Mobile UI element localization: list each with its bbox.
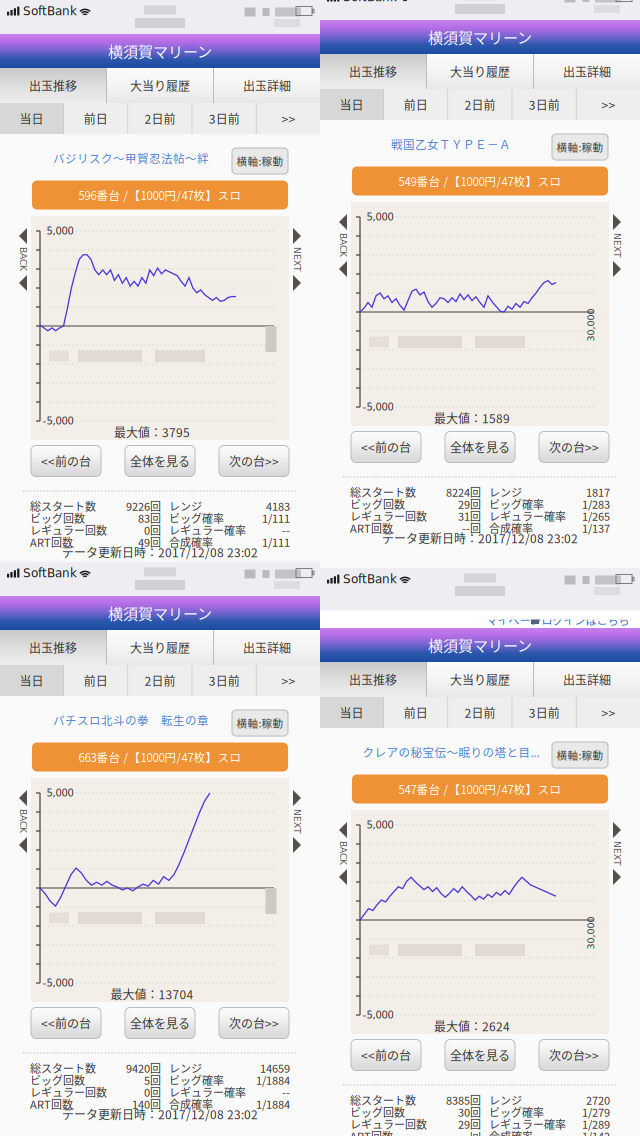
staticText: レギュラー確率: [489, 508, 566, 524]
staticText: パチスロ北斗の拳 転生の章: [53, 712, 209, 728]
button[interactable]: 当日: [320, 89, 383, 120]
staticText: SoftBank: [343, 572, 397, 586]
button[interactable]: 2日前: [448, 697, 512, 728]
button[interactable]: 全体を見る: [125, 445, 195, 476]
button[interactable]: 全体を見る: [445, 431, 515, 462]
staticText: 3日前: [209, 672, 240, 689]
staticText: 5,000: [46, 225, 73, 237]
staticText: 出玉詳細: [563, 63, 611, 80]
button[interactable]: >>: [257, 665, 320, 696]
staticText: ビッグ回数: [30, 1072, 85, 1088]
button[interactable]: <<前の台: [351, 1039, 421, 1070]
staticText: ビッグ回数: [350, 496, 405, 512]
button[interactable]: 前日: [384, 697, 447, 728]
button[interactable]: 当日: [320, 697, 383, 728]
button[interactable]: 全体を見る: [125, 1007, 195, 1038]
staticText: 横須賀マリーン: [108, 40, 212, 62]
button[interactable]: 次の台>>: [219, 1007, 289, 1038]
button[interactable]: 3日前: [513, 697, 576, 728]
button[interactable]: 2日前: [448, 89, 512, 120]
button[interactable]: <<前の台: [31, 1007, 101, 1038]
button[interactable]: Back: [335, 203, 351, 427]
staticText: ART回数: [350, 1128, 393, 1136]
button[interactable]: 大当り履歴: [107, 630, 213, 665]
button[interactable]: >>: [257, 103, 320, 134]
button[interactable]: 全体を見る: [445, 1039, 515, 1070]
staticText: 30回: [458, 1104, 481, 1120]
button[interactable]: 547番台 /【1000円/47枚】スロ: [352, 774, 608, 803]
staticText: 2日前: [144, 110, 175, 127]
staticText: 前日: [84, 672, 108, 689]
staticText: --回: [462, 520, 481, 536]
button[interactable]: Next: [289, 217, 305, 441]
staticText: >>: [601, 704, 615, 721]
staticText: 最大値：3795: [114, 423, 190, 441]
button[interactable]: 出玉推移: [0, 630, 106, 665]
staticText: BACK: [331, 240, 355, 250]
button[interactable]: <<前の台: [351, 431, 421, 462]
button[interactable]: 2日前: [128, 665, 192, 696]
button[interactable]: 大当り履歴: [107, 68, 213, 103]
staticText: 31回: [458, 508, 481, 524]
button[interactable]: 出玉詳細: [214, 630, 320, 665]
staticText: ART回数: [30, 534, 73, 550]
staticText: 8224回: [446, 484, 481, 500]
button[interactable]: Back: [335, 811, 351, 1035]
button[interactable]: 3日前: [193, 103, 256, 134]
staticText: >>: [281, 672, 295, 689]
button[interactable]: 大当り履歴: [427, 54, 533, 89]
button[interactable]: 横軸:稼動: [232, 710, 288, 736]
staticText: <<前の台: [41, 1014, 91, 1032]
button[interactable]: Next: [609, 811, 625, 1035]
button[interactable]: 横軸:稼動: [552, 134, 608, 160]
button[interactable]: >>: [577, 697, 640, 728]
button[interactable]: 横軸:稼動: [552, 742, 608, 768]
staticText: 前日: [404, 704, 428, 721]
button[interactable]: 2日前: [128, 103, 192, 134]
button[interactable]: 出玉推移: [320, 54, 426, 89]
staticText: 当日: [20, 110, 44, 127]
staticText: 横軸:稼動: [236, 715, 283, 731]
button[interactable]: 前日: [64, 665, 127, 696]
button[interactable]: 3日前: [193, 665, 256, 696]
staticText: <<前の台: [41, 452, 91, 470]
button[interactable]: 横軸:稼動: [232, 148, 288, 174]
staticText: ART回数: [30, 1096, 73, 1112]
staticText: NEXT: [605, 240, 629, 250]
button[interactable]: 出玉推移: [0, 68, 106, 103]
staticText: 当日: [20, 672, 44, 689]
staticText: 総スタート数: [350, 484, 416, 500]
button[interactable]: >>: [577, 89, 640, 120]
button[interactable]: 前日: [64, 103, 127, 134]
button[interactable]: 596番台 /【1000円/47枚】スロ: [32, 180, 288, 209]
button[interactable]: 大当り履歴: [427, 662, 533, 697]
staticText: 0回: [144, 522, 161, 538]
button[interactable]: 当日: [0, 665, 63, 696]
staticText: 合成確率: [169, 534, 213, 550]
staticText: 出玉詳細: [563, 671, 611, 688]
staticText: レギュラー回数: [350, 508, 427, 524]
staticText: データ更新日時：2017/12/08 23:02: [382, 529, 578, 547]
button[interactable]: 549番台 /【1000円/47枚】スロ: [352, 166, 608, 195]
button[interactable]: Back: [15, 779, 31, 1003]
staticText: 3日前: [529, 96, 560, 113]
staticText: --: [282, 1084, 290, 1100]
button[interactable]: Back: [15, 217, 31, 441]
staticText: BACK: [11, 254, 35, 264]
button[interactable]: <<前の台: [31, 445, 101, 476]
button[interactable]: 次の台>>: [539, 1039, 609, 1070]
staticText: --: [282, 522, 290, 538]
button[interactable]: 次の台>>: [219, 445, 289, 476]
button[interactable]: 3日前: [513, 89, 576, 120]
button[interactable]: 前日: [384, 89, 447, 120]
button[interactable]: 次の台>>: [539, 431, 609, 462]
button[interactable]: 出玉詳細: [214, 68, 320, 103]
staticText: クレアの秘宝伝〜眠りの塔と目...: [362, 744, 539, 760]
button[interactable]: 663番台 /【1000円/47枚】スロ: [32, 742, 288, 771]
button[interactable]: Next: [609, 203, 625, 427]
button[interactable]: 出玉詳細: [534, 54, 640, 89]
button[interactable]: Next: [289, 779, 305, 1003]
button[interactable]: 出玉詳細: [534, 662, 640, 697]
button[interactable]: 出玉推移: [320, 662, 426, 697]
button[interactable]: 当日: [0, 103, 63, 134]
